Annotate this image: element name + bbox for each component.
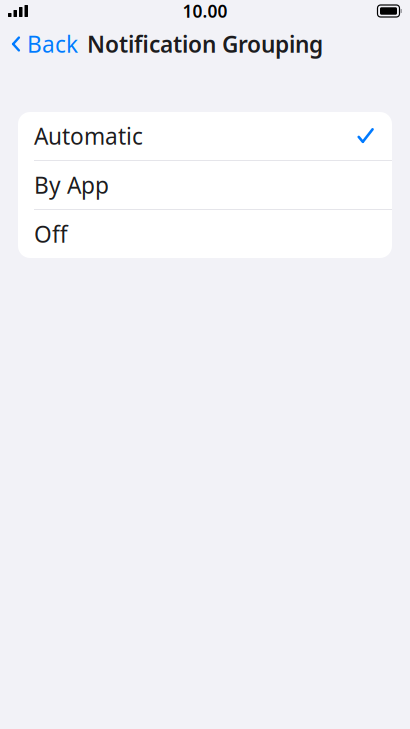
button[interactable]: By App <box>18 161 392 209</box>
staticText: Back <box>27 29 78 59</box>
staticText: By App <box>34 170 109 200</box>
staticText: Automatic <box>34 121 143 151</box>
button[interactable]: Back <box>0 23 78 65</box>
button[interactable]: Off <box>18 210 392 258</box>
staticText: 10.00 <box>182 0 227 22</box>
staticText: Off <box>34 219 68 249</box>
button[interactable]: Automatic <box>18 112 392 160</box>
staticText: Notification Grouping <box>87 29 323 59</box>
